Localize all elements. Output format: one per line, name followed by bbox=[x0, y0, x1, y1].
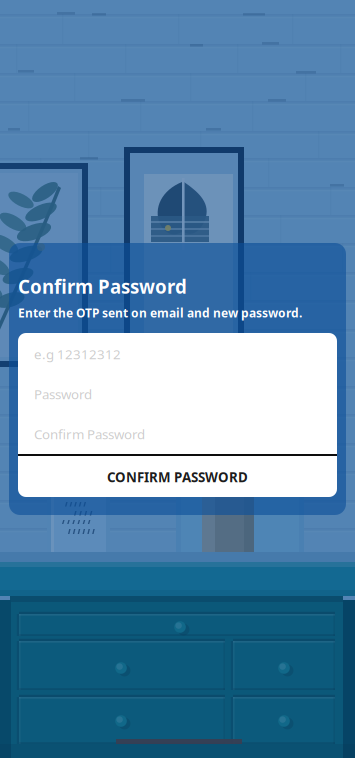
button[interactable]: CONFIRM PASSWORD bbox=[18, 456, 337, 498]
staticText: Confirm Password bbox=[18, 274, 187, 299]
staticText: Password bbox=[34, 385, 92, 403]
button[interactable]: e.g 12312312 bbox=[18, 334, 337, 374]
staticText: CONFIRM PASSWORD bbox=[107, 468, 248, 486]
staticText: Confirm Password bbox=[34, 425, 145, 443]
button[interactable]: Confirm Password bbox=[18, 414, 337, 454]
staticText: e.g 12312312 bbox=[34, 345, 121, 363]
button[interactable]: Password bbox=[18, 374, 337, 414]
staticText: Enter the OTP sent on email and new pass… bbox=[18, 305, 302, 321]
